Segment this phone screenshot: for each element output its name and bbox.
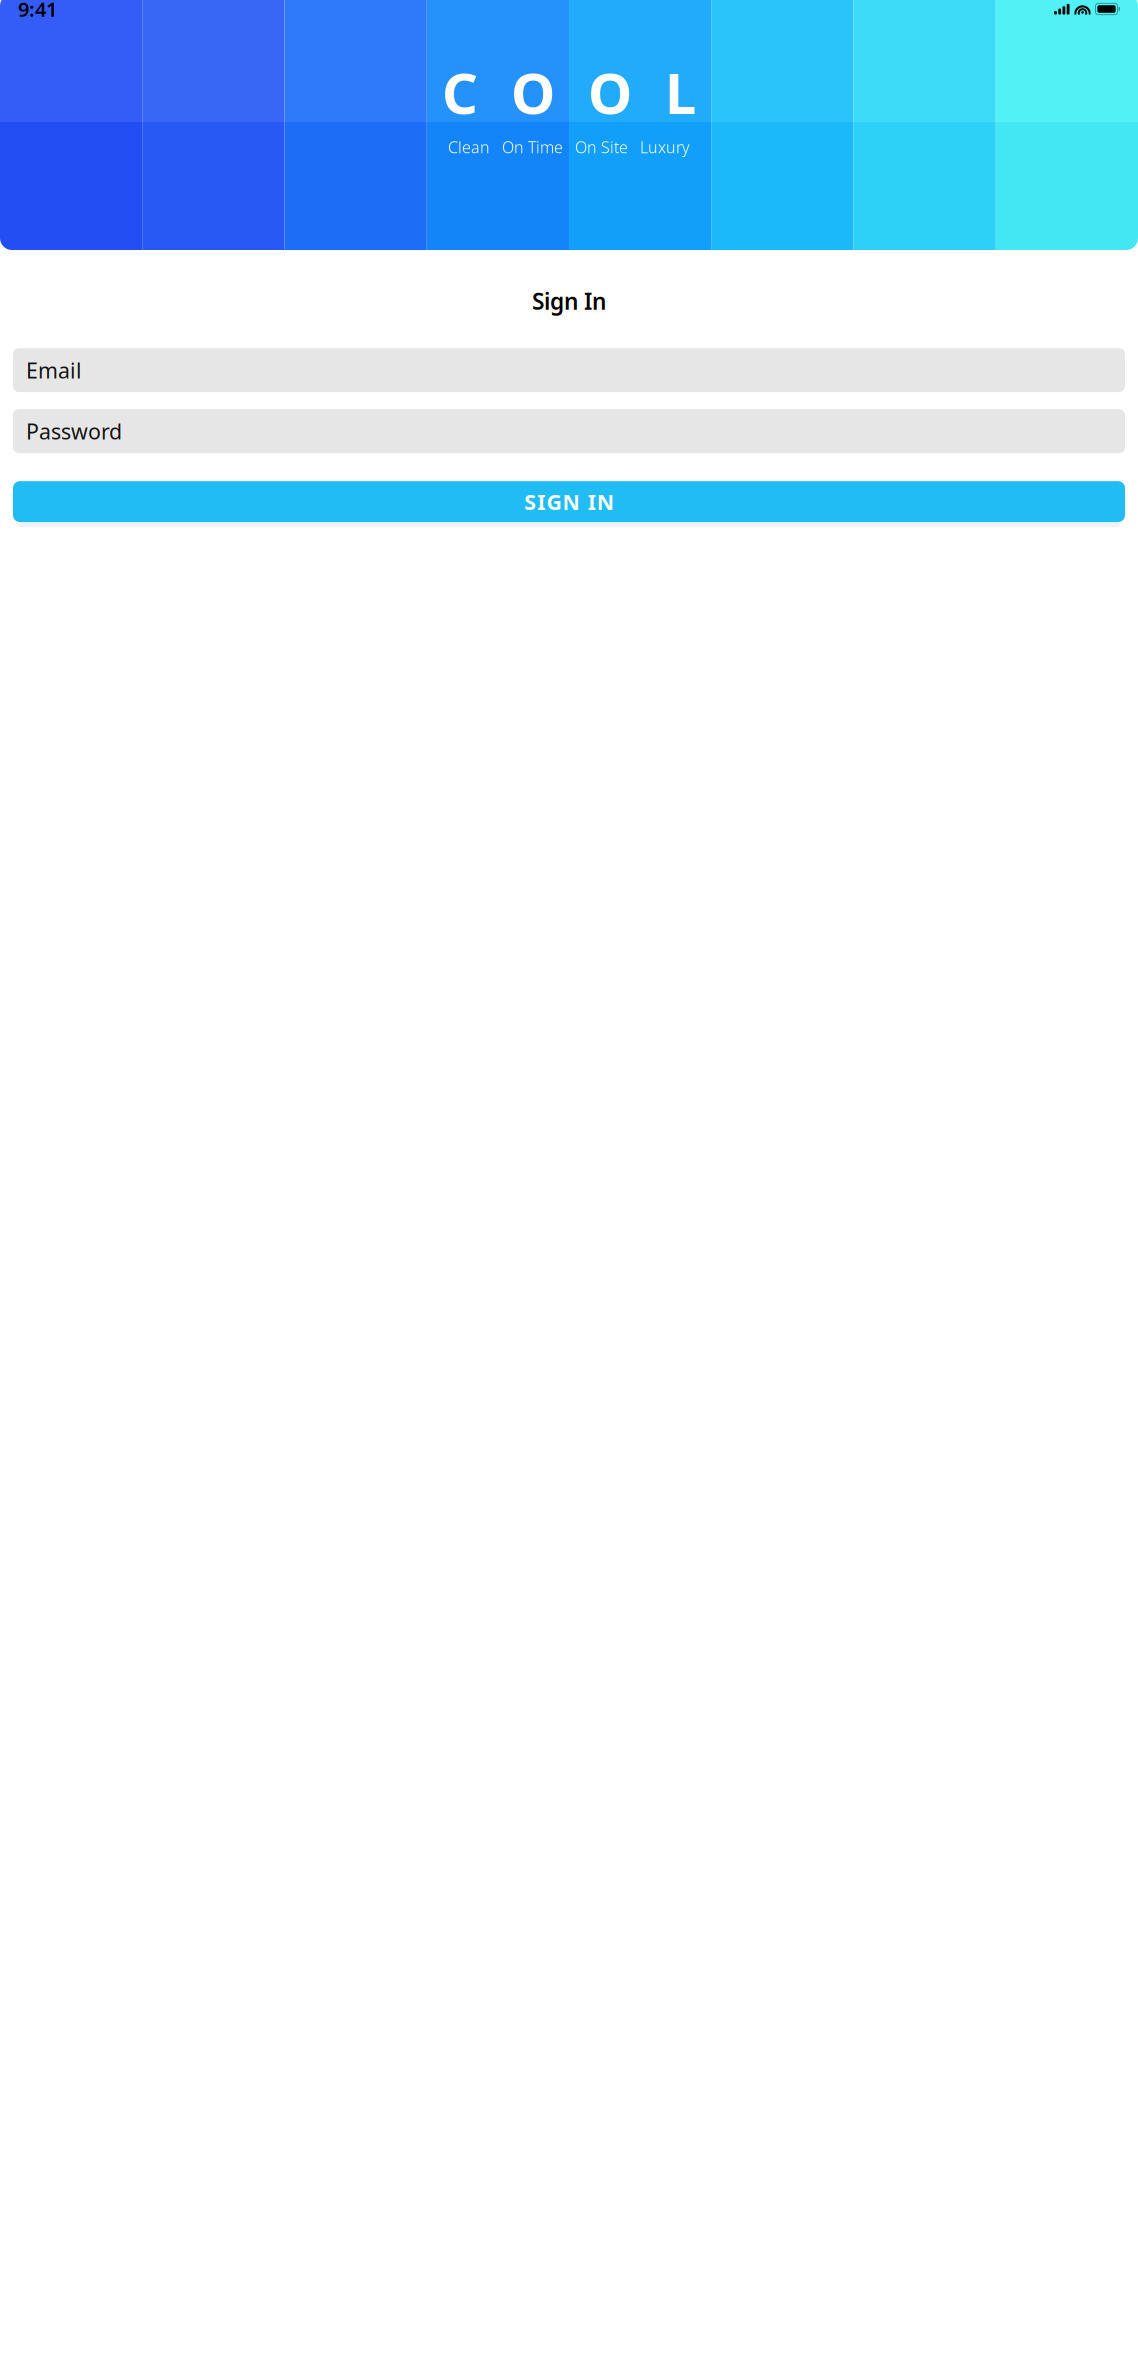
button[interactable]: Email	[13, 348, 1125, 392]
staticText: C O O L	[442, 55, 696, 129]
staticText: Email	[26, 356, 82, 384]
staticText: Clean On Time On Site Luxury	[448, 136, 690, 158]
staticText: Password	[26, 417, 122, 445]
staticText: 9:41	[18, 0, 57, 22]
staticText: SIGN IN	[524, 487, 614, 516]
staticText: Sign In	[532, 286, 606, 316]
button[interactable]: SIGN IN	[13, 481, 1125, 522]
button[interactable]: Password	[13, 409, 1125, 453]
